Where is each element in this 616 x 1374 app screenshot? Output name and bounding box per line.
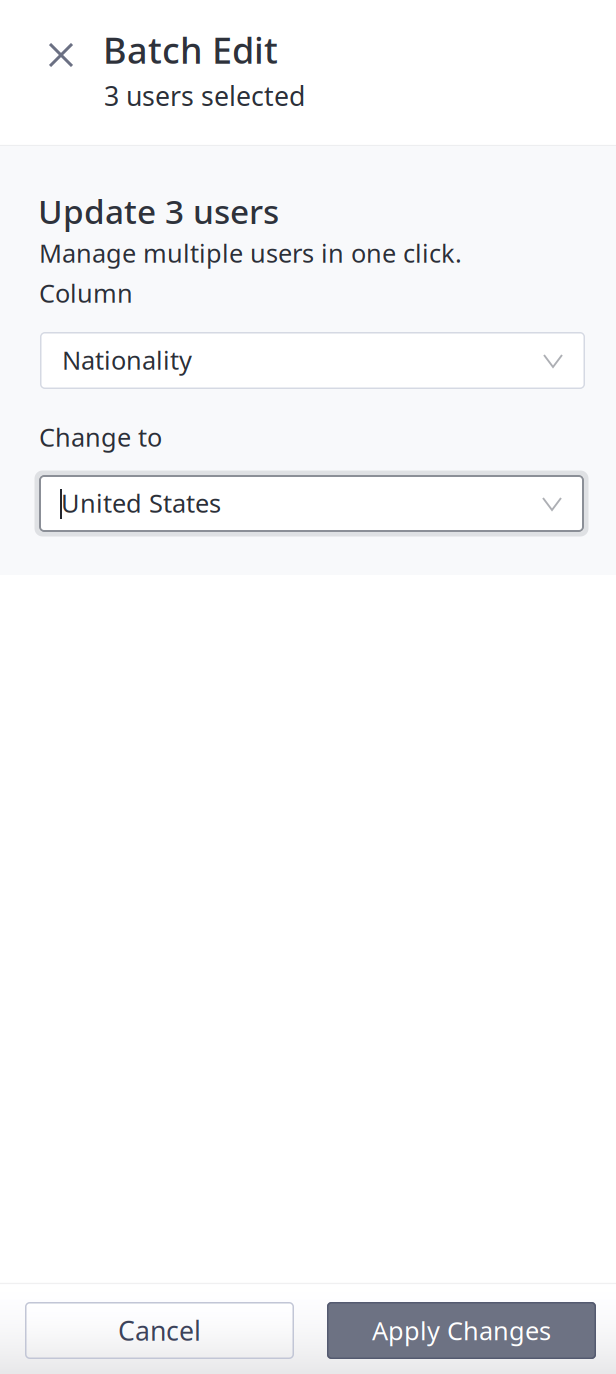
staticText: Batch Edit	[103, 26, 278, 74]
staticText: Nationality	[62, 343, 192, 377]
staticText: Manage multiple users in one click.	[39, 236, 462, 270]
button[interactable]: Apply Changes	[327, 1302, 596, 1359]
staticText: Apply Changes	[372, 1314, 551, 1347]
staticText: Cancel	[118, 1313, 201, 1348]
button[interactable]: Nationality	[35, 327, 589, 393]
staticText: Change to	[39, 420, 162, 454]
staticText: Update 3 users	[38, 189, 279, 233]
button[interactable]: Close	[39, 33, 83, 77]
staticText: Column	[39, 276, 133, 310]
staticText: 3 users selected	[104, 78, 305, 113]
button[interactable]: Cancel	[25, 1302, 294, 1359]
button[interactable]: United States	[34, 470, 588, 536]
staticText: United States	[61, 486, 221, 520]
